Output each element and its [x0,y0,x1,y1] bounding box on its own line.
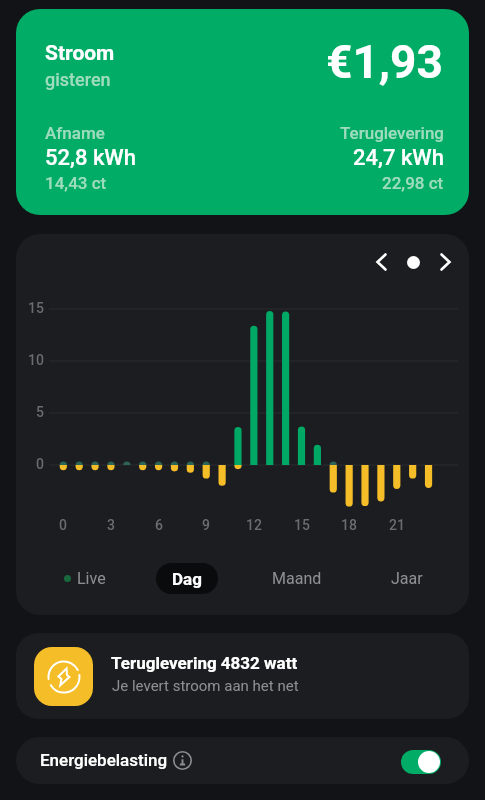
staticText: 15 [28,300,44,316]
staticText: Stroom [45,41,115,66]
button[interactable]: Maand [251,563,343,594]
staticText: 3 [107,517,115,533]
staticText: 0 [59,517,67,533]
staticText: Teruglevering [340,123,444,143]
staticText: 52,8 kWh [45,145,136,171]
staticText: 0 [36,456,44,472]
staticText: 12 [246,517,262,533]
staticText: 6 [155,517,163,533]
staticText: 5 [36,404,44,420]
staticText: 24,7 kWh [353,145,444,171]
staticText: gisteren [45,69,111,90]
staticText: Live [77,569,106,588]
button[interactable]: Next day [429,246,461,278]
staticText: 15 [294,517,310,533]
staticText: 18 [341,517,357,533]
staticText: Dag [172,569,202,589]
staticText: Afname [45,123,105,143]
staticText: 14,43 ct [45,173,107,193]
button[interactable]: Dag [156,563,218,594]
staticText: 9 [202,517,210,533]
button[interactable]: Energiebelasting [16,737,469,784]
button[interactable]: Stroom [16,9,469,215]
staticText: €1,93 [326,35,443,89]
staticText: Je levert stroom aan het net [112,677,299,695]
button[interactable]: Select day [397,246,429,278]
button[interactable]: Previous day [365,246,397,278]
staticText: Jaar [391,569,423,588]
staticText: Maand [272,569,322,588]
button[interactable]: Info [173,751,192,770]
staticText: 22,98 ct [382,173,444,193]
staticText: 21 [389,517,405,533]
button[interactable]: Teruglevering 4832 watt [16,633,469,719]
staticText: 10 [28,352,44,368]
button[interactable]: Energiebelasting toggle [401,750,441,774]
staticText: Teruglevering 4832 watt [111,653,298,673]
button[interactable]: Jaar [361,563,453,594]
staticText: Energiebelasting [40,750,168,770]
button[interactable]: Live [39,563,131,594]
